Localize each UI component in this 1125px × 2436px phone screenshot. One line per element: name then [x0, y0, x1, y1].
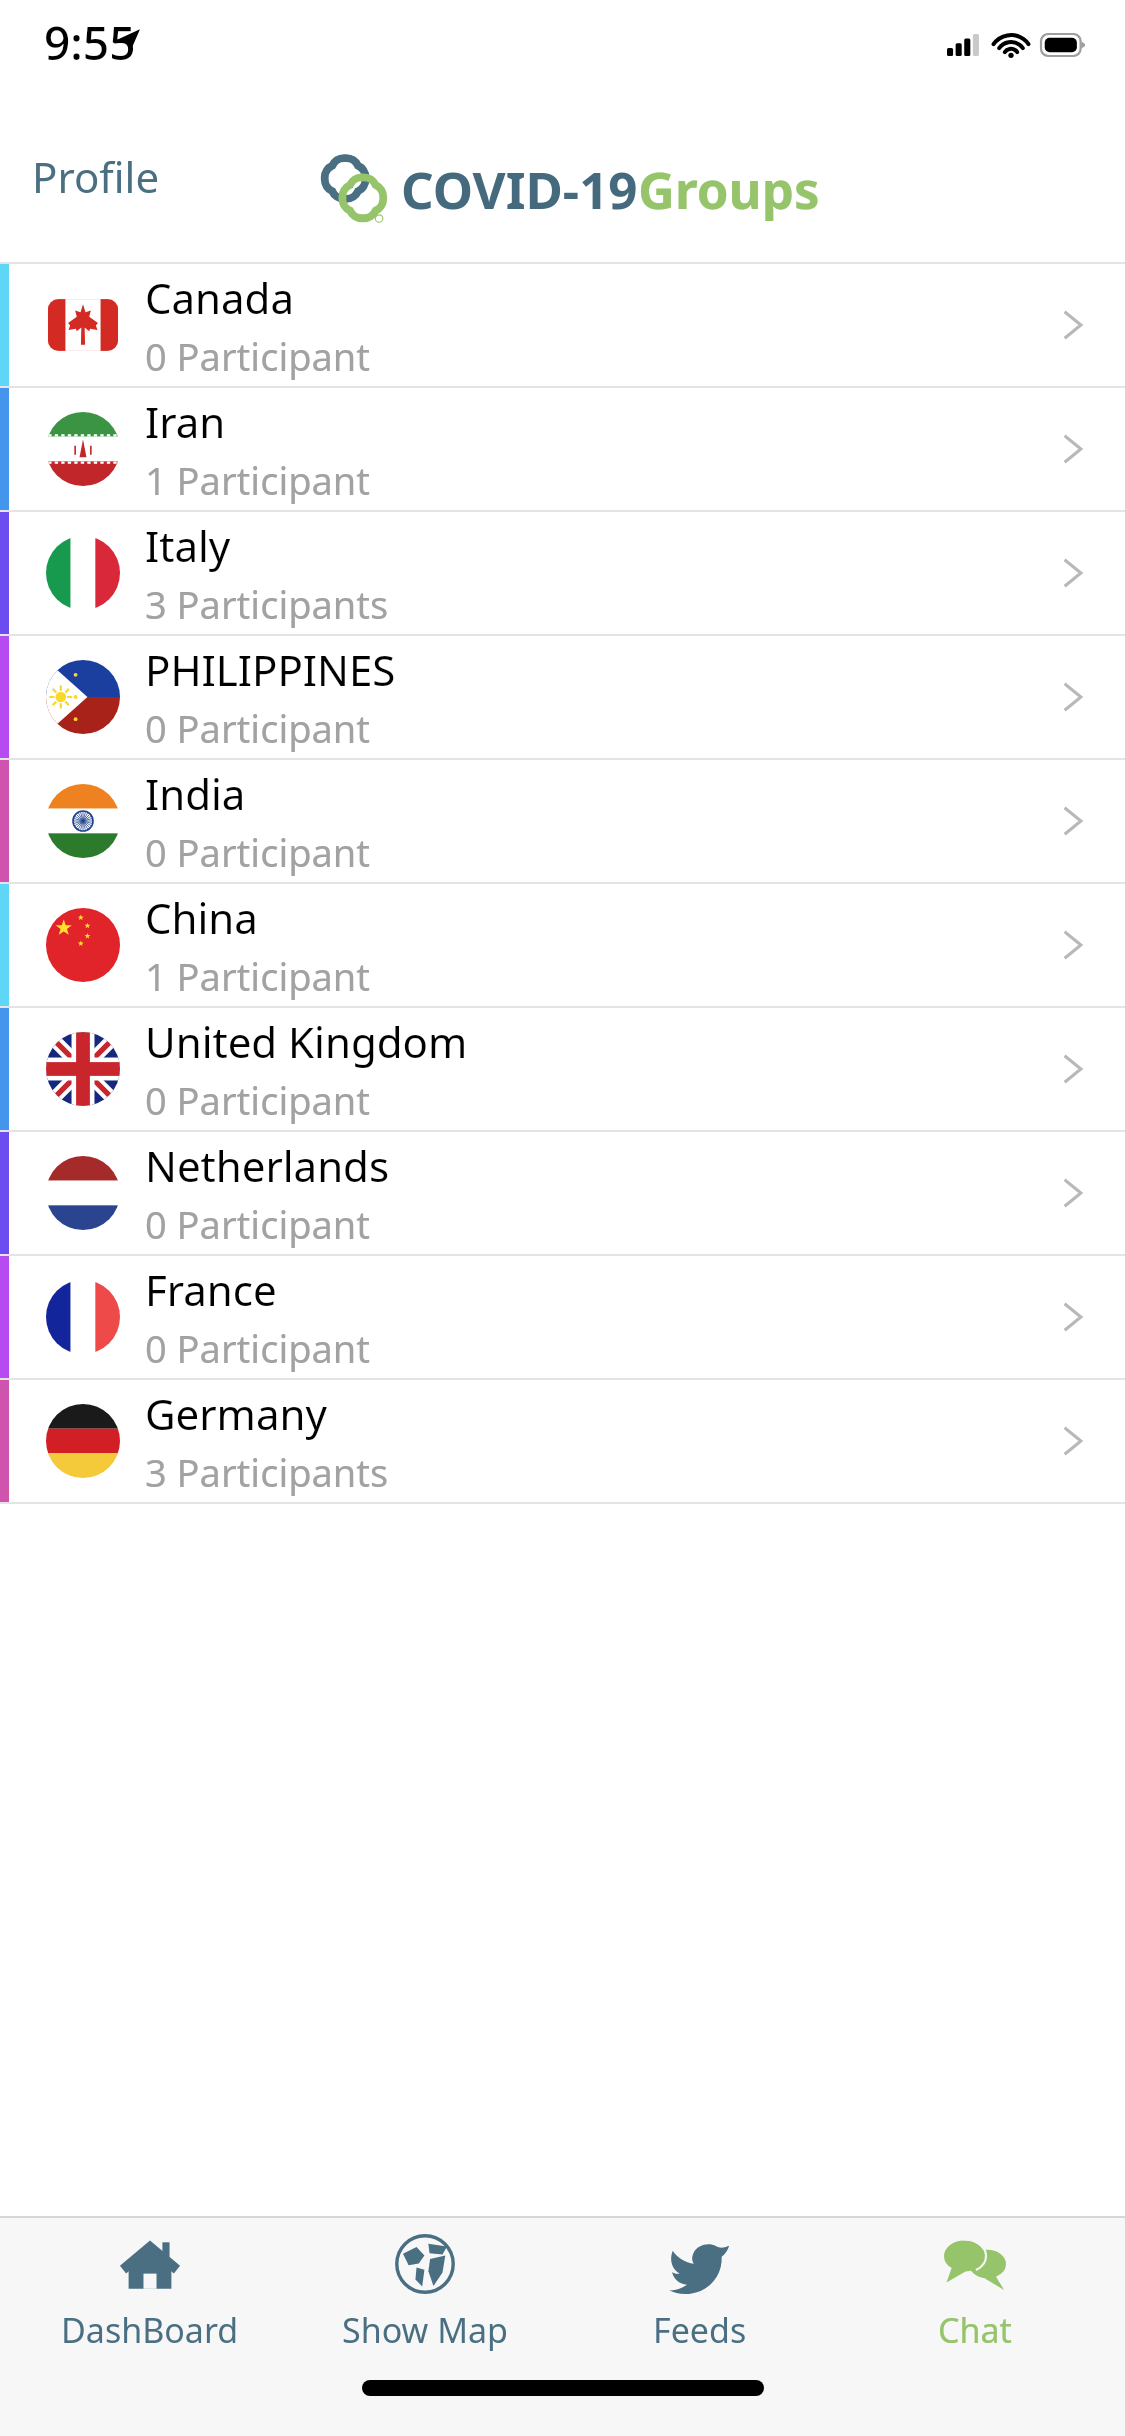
staticText: Groups	[638, 154, 820, 223]
button[interactable]: United Kingdom	[0, 1008, 1125, 1132]
staticText: 9:55	[44, 11, 136, 74]
staticText: Canada	[145, 269, 295, 326]
button[interactable]: China	[0, 884, 1125, 1008]
button[interactable]: Canada	[0, 264, 1125, 388]
staticText: 0 Participant	[145, 330, 371, 382]
staticText: Feeds	[653, 2307, 747, 2353]
staticText: China	[145, 889, 258, 946]
staticText: Profile	[32, 148, 160, 205]
button[interactable]: Italy	[0, 512, 1125, 636]
staticText: Chat	[938, 2307, 1012, 2353]
staticText: France	[145, 1261, 277, 1318]
button[interactable]: Netherlands	[0, 1132, 1125, 1256]
button[interactable]: France	[0, 1256, 1125, 1380]
staticText: PHILIPPINES	[145, 641, 396, 698]
staticText: 3 Participants	[145, 578, 389, 630]
button[interactable]: Feeds	[575, 2218, 825, 2368]
button[interactable]: Chat	[850, 2218, 1100, 2368]
button[interactable]: Profile	[14, 134, 178, 219]
button[interactable]: Germany	[0, 1380, 1125, 1504]
staticText: United Kingdom	[145, 1013, 468, 1070]
button[interactable]: India	[0, 760, 1125, 884]
staticText: India	[145, 765, 246, 822]
staticText: 3 Participants	[145, 1446, 389, 1498]
staticText: DashBoard	[61, 2307, 239, 2353]
staticText: Italy	[145, 517, 231, 574]
staticText: 0 Participant	[145, 1198, 371, 1250]
staticText: Germany	[145, 1385, 327, 1442]
staticText: 1 Participant	[145, 950, 371, 1002]
button[interactable]: Show Map	[300, 2218, 550, 2368]
staticText: COVID-19	[401, 154, 638, 223]
button[interactable]: DashBoard	[25, 2218, 275, 2368]
staticText: 0 Participant	[145, 702, 371, 754]
staticText: 0 Participant	[145, 1074, 371, 1126]
button[interactable]: Iran	[0, 388, 1125, 512]
staticText: 0 Participant	[145, 826, 371, 878]
button[interactable]: PHILIPPINES	[0, 636, 1125, 760]
staticText: Show Map	[342, 2307, 508, 2353]
staticText: Iran	[145, 393, 226, 450]
staticText: Netherlands	[145, 1137, 390, 1194]
staticText: 1 Participant	[145, 454, 371, 506]
staticText: 0 Participant	[145, 1322, 371, 1374]
